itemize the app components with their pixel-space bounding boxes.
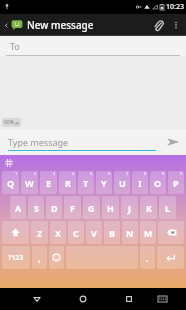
staticText: I: [138, 177, 142, 189]
button[interactable]: J: [121, 196, 138, 219]
staticText: L: [165, 202, 171, 214]
staticText: Y: [101, 177, 107, 189]
staticText: D: [51, 202, 58, 214]
staticText: New message: [27, 18, 94, 32]
staticText: 0: [180, 171, 183, 176]
button[interactable]: X: [50, 221, 66, 244]
button[interactable]: S: [28, 196, 44, 219]
button[interactable]: Navigate up: [2, 21, 11, 30]
button[interactable]: R: [59, 171, 76, 194]
staticText: N: [126, 227, 134, 239]
button[interactable]: V: [86, 221, 102, 244]
button[interactable]: H: [102, 196, 119, 219]
button[interactable]: T: [78, 171, 94, 194]
staticText: V: [91, 227, 97, 239]
button[interactable]: K: [140, 196, 157, 219]
button[interactable]: Q: [2, 171, 19, 194]
staticText: T: [83, 177, 89, 189]
button[interactable]: Keyboard settings: [2, 156, 16, 170]
staticText: C: [73, 227, 79, 239]
staticText: O: [154, 177, 162, 189]
button[interactable]: P: [168, 171, 184, 194]
button[interactable]: To: [0, 36, 186, 56]
button[interactable]: Z: [31, 221, 48, 244]
staticText: 4: [72, 171, 75, 176]
button[interactable]: Send: [160, 129, 186, 155]
button[interactable]: N: [122, 221, 138, 244]
staticText: B: [109, 227, 115, 239]
staticText: G: [88, 202, 95, 214]
button[interactable]: More options: [168, 17, 184, 33]
staticText: U: [119, 177, 126, 189]
button[interactable]: ,: [32, 246, 47, 269]
staticText: 2: [34, 171, 37, 176]
staticText: 7: [126, 171, 129, 176]
staticText: H: [107, 202, 114, 214]
staticText: Z: [37, 227, 43, 239]
staticText: E: [46, 177, 52, 189]
button[interactable]: Shift: [2, 221, 29, 244]
staticText: ?123: [8, 253, 24, 263]
button[interactable]: W: [21, 171, 38, 194]
staticText: 3: [53, 171, 56, 176]
staticText: 1: [15, 171, 18, 176]
staticText: 6: [108, 171, 111, 176]
button[interactable]: Emoji: [49, 246, 64, 269]
staticText: 9: [162, 171, 165, 176]
staticText: ,: [38, 252, 41, 264]
staticText: W: [25, 177, 34, 189]
staticText: Type message: [8, 136, 69, 148]
staticText: F: [70, 202, 75, 214]
button[interactable]: .: [140, 246, 155, 269]
button[interactable]: Recent apps: [112, 288, 146, 310]
button[interactable]: A: [10, 196, 26, 219]
button[interactable]: I: [132, 171, 148, 194]
button[interactable]: Home: [66, 288, 100, 310]
button[interactable]: F: [64, 196, 81, 219]
staticText: Q: [7, 177, 15, 189]
button[interactable]: Switch keyboard: [146, 288, 179, 310]
staticText: A: [15, 202, 22, 214]
button[interactable]: [66, 246, 138, 269]
button[interactable]: Type message: [8, 129, 156, 155]
staticText: J: [128, 202, 131, 214]
button[interactable]: Y: [96, 171, 112, 194]
staticText: 60%: [4, 119, 14, 126]
button[interactable]: G: [83, 196, 100, 219]
button[interactable]: U: [114, 171, 130, 194]
staticText: K: [146, 202, 152, 214]
button[interactable]: L: [159, 196, 176, 219]
staticText: X: [55, 227, 62, 239]
button[interactable]: ?123: [2, 246, 30, 269]
staticText: R: [65, 177, 71, 189]
button[interactable]: D: [46, 196, 62, 219]
staticText: P: [173, 177, 179, 189]
staticText: 10:23: [166, 2, 184, 12]
button[interactable]: E: [40, 171, 57, 194]
staticText: S: [34, 202, 39, 214]
button[interactable]: Back: [20, 288, 54, 310]
staticText: M: [144, 227, 153, 239]
button[interactable]: Backspace: [158, 221, 184, 244]
button[interactable]: O: [150, 171, 166, 194]
staticText: 5: [90, 171, 93, 176]
button[interactable]: Attach: [148, 15, 168, 35]
staticText: .: [146, 252, 149, 264]
staticText: To: [10, 40, 20, 52]
button[interactable]: Enter: [157, 246, 184, 269]
button[interactable]: M: [140, 221, 156, 244]
button[interactable]: 60%: [2, 118, 21, 127]
staticText: 8: [144, 171, 147, 176]
button[interactable]: C: [68, 221, 84, 244]
button[interactable]: B: [104, 221, 120, 244]
